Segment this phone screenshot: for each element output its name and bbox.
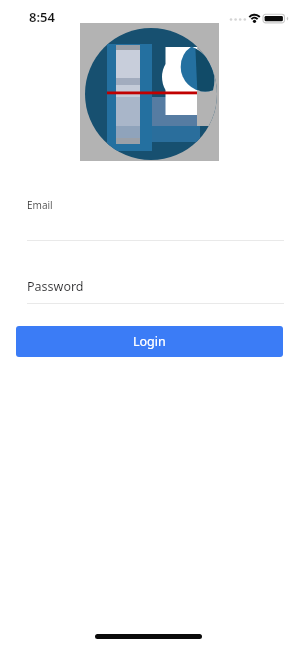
button[interactable]: Password [16, 268, 284, 304]
staticText: Login [133, 333, 166, 350]
button[interactable]: Login [16, 326, 283, 357]
staticText: 8:54 [29, 8, 55, 26]
staticText: Password [27, 278, 84, 295]
staticText: Email [27, 198, 53, 212]
button[interactable]: Email [16, 191, 284, 241]
